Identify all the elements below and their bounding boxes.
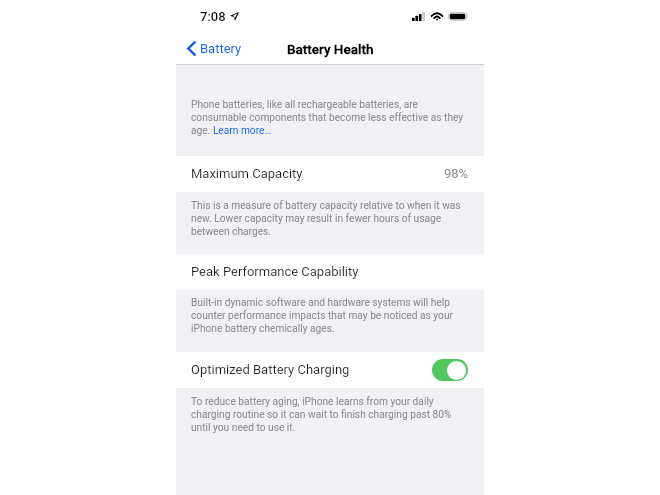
- staticText: Optimized Battery Charging: [191, 362, 350, 377]
- button[interactable]: Optimized Battery Charging, on: [432, 359, 468, 381]
- staticText: Maximum Capacity: [191, 166, 303, 181]
- staticText: Battery: [200, 41, 242, 56]
- other: Cellular signal: [412, 12, 425, 21]
- other: Location services active: [230, 12, 239, 21]
- button[interactable]: Peak Performance Capability: [176, 254, 484, 290]
- staticText: Phone batteries, like all rechargeable b…: [191, 98, 467, 137]
- staticText: To reduce battery aging, iPhone learns f…: [191, 395, 467, 434]
- other: Wi-Fi connected: [431, 12, 443, 21]
- staticText: 98%: [444, 166, 469, 181]
- other: Battery full: [448, 12, 469, 21]
- staticText: Peak Performance Capability: [191, 264, 359, 279]
- button[interactable]: Battery: [176, 39, 250, 58]
- button[interactable]: Maximum Capacity: [176, 156, 484, 192]
- staticText: Built-in dynamic software and hardware s…: [191, 296, 467, 335]
- staticText: Battery Health: [287, 41, 374, 57]
- staticText: This is a measure of battery capacity re…: [191, 199, 467, 238]
- staticText: 7:08: [200, 9, 226, 24]
